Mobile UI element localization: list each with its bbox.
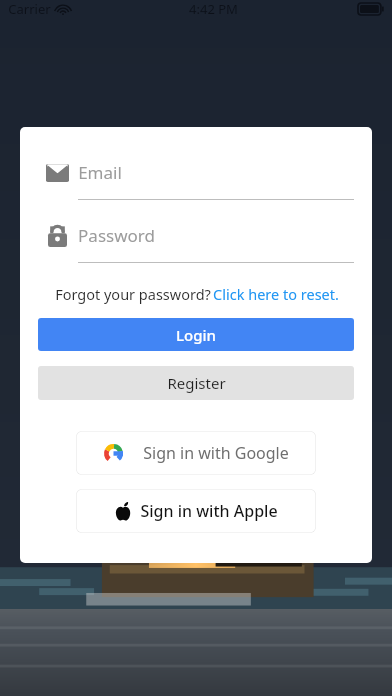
staticText: Sign in with Google <box>143 442 289 464</box>
staticText: Login <box>176 325 216 345</box>
staticText: Register <box>167 373 226 393</box>
staticText: Email <box>78 161 122 184</box>
staticText: Carrier <box>8 0 51 18</box>
button[interactable]: Register <box>38 366 354 400</box>
staticText: Click here to reset. <box>213 284 339 304</box>
button[interactable]: Click here to reset. <box>213 284 339 304</box>
button[interactable]: Login <box>38 318 354 351</box>
staticText: Sign in with Apple <box>140 500 278 522</box>
staticText: Password <box>78 224 155 247</box>
staticText: Forgot your password? <box>53 284 213 304</box>
staticText: 4:42 PM <box>189 0 238 18</box>
button[interactable]: Sign in with Google <box>76 431 316 475</box>
button[interactable]: Sign in with Apple <box>76 489 316 533</box>
